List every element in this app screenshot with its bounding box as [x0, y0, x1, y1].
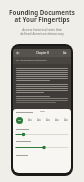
- button[interactable]: VII. Amendments legislation: [13, 57, 71, 64]
- staticText: Aa: [18, 119, 21, 122]
- button[interactable]: Aa: [55, 118, 59, 122]
- button[interactable]: Aa: [64, 118, 68, 122]
- button[interactable]: [16, 145, 68, 150]
- staticText: VII. Amendments legislation: [16, 59, 47, 62]
- button[interactable]: Chapter 8: [13, 49, 71, 57]
- staticText: Aa: [63, 51, 67, 55]
- button[interactable]: Aa: [46, 118, 50, 122]
- button[interactable]: [16, 132, 68, 137]
- staticText: Chapter 8: [36, 51, 49, 55]
- button[interactable]: Aa: [16, 117, 23, 124]
- staticText: Access historical texts that defined Ame…: [0, 28, 84, 36]
- button[interactable]: Aa: [28, 118, 32, 122]
- staticText: Founding Documents at Your Fingertips: [0, 8, 84, 24]
- button[interactable]: Aa: [37, 118, 41, 122]
